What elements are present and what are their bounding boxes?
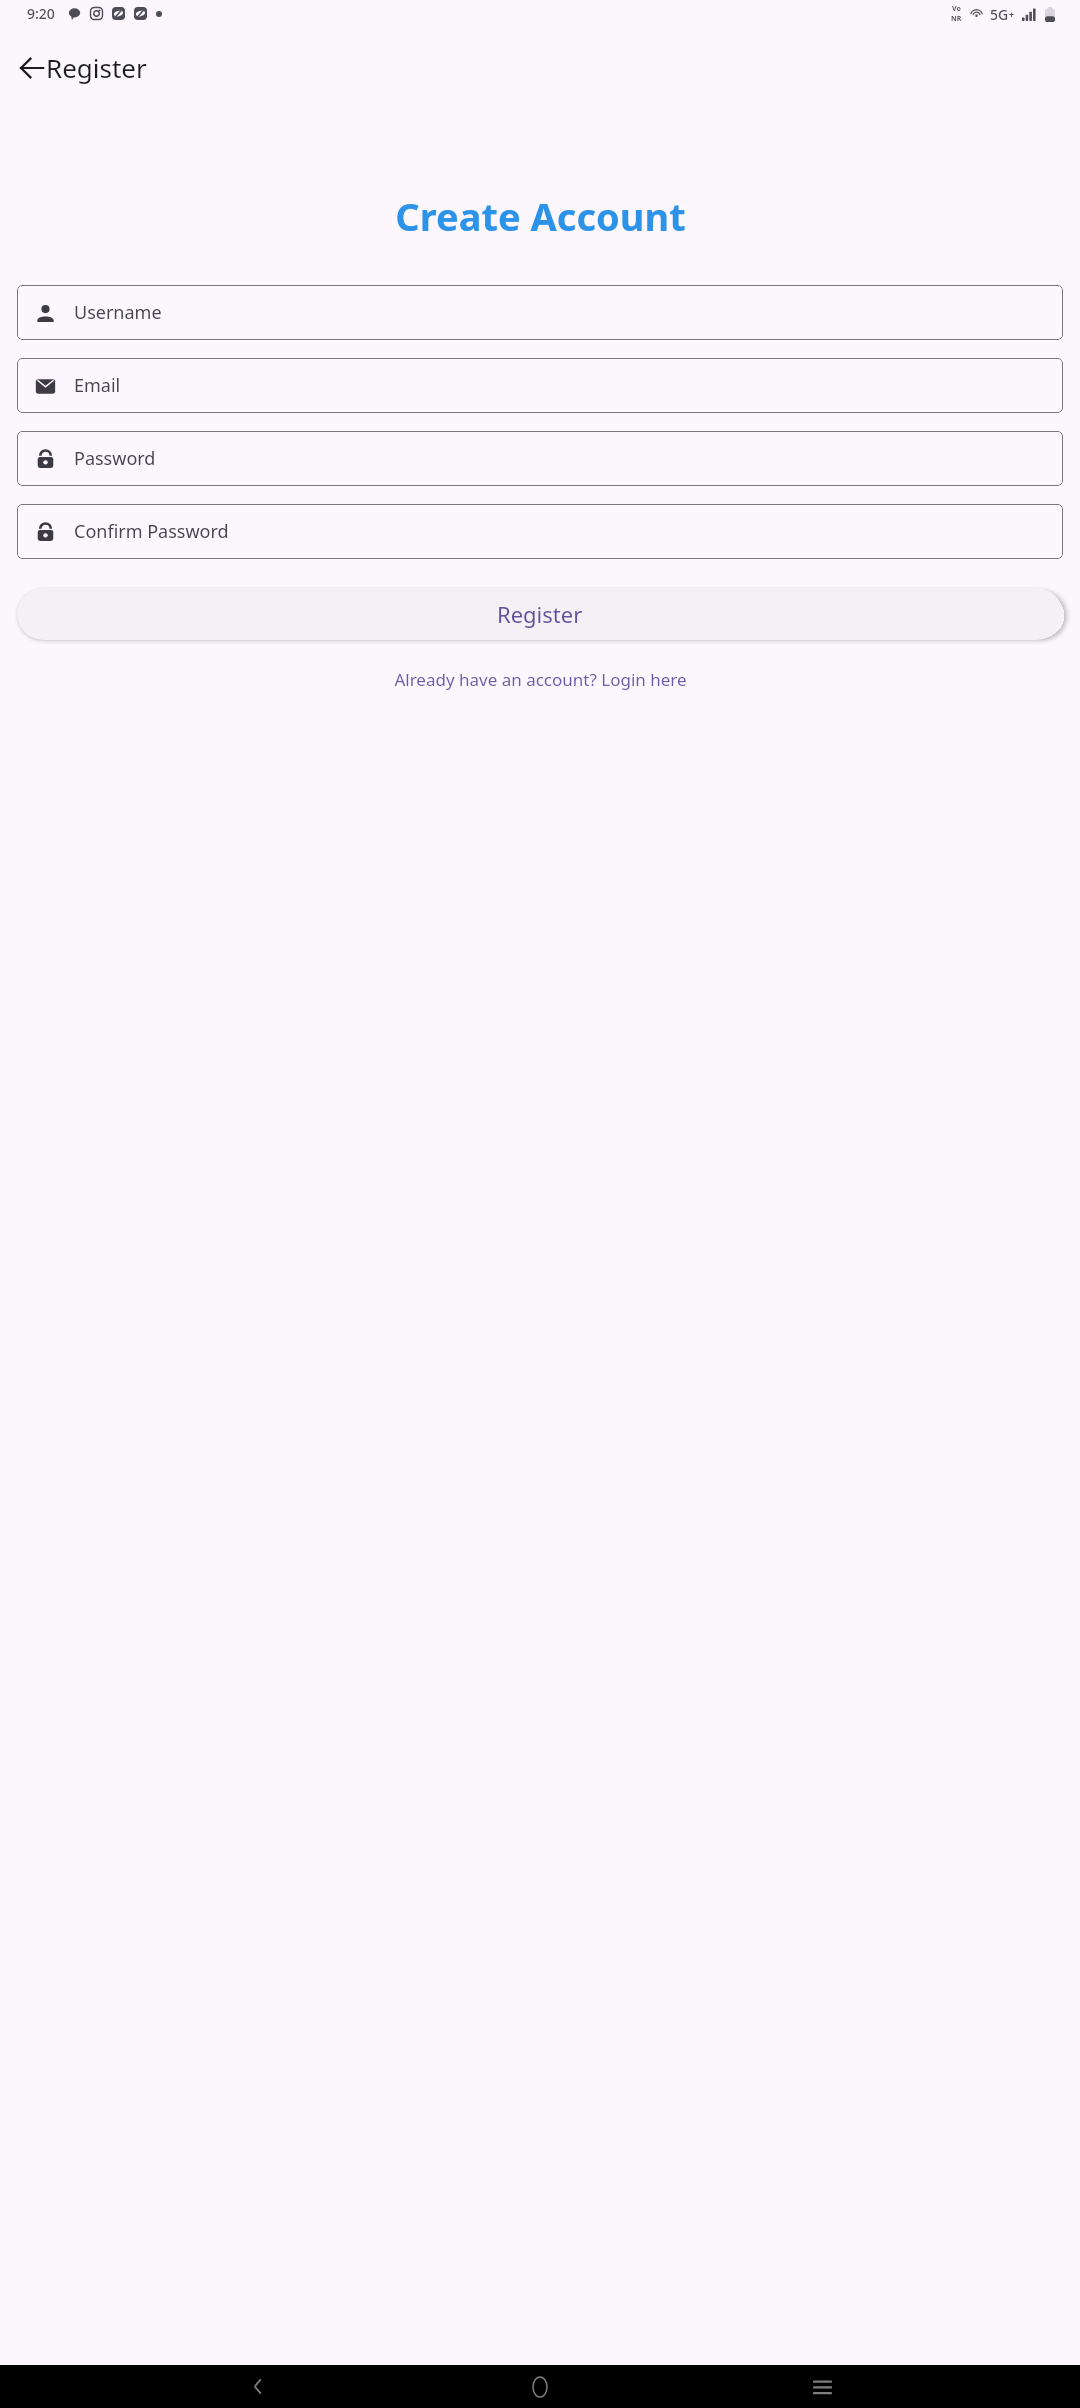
staticText: Register (46, 50, 147, 85)
staticText: Register (497, 599, 583, 629)
button[interactable]: Back (8, 44, 56, 92)
button[interactable]: Password (17, 431, 1063, 486)
button[interactable]: Recent apps (798, 2365, 846, 2408)
button[interactable]: Confirm Password (17, 504, 1063, 559)
button[interactable]: Back (234, 2365, 282, 2408)
staticText: + (1009, 8, 1015, 20)
staticText: 9:20 (27, 4, 55, 23)
button[interactable]: Username (17, 285, 1063, 340)
button[interactable]: Email (17, 358, 1063, 413)
staticText: Vo (952, 4, 961, 14)
staticText: Create Account (395, 190, 686, 242)
button[interactable]: Home (516, 2365, 564, 2408)
button[interactable]: Already have an account? Login here (0, 662, 1080, 697)
button[interactable]: Register (17, 588, 1063, 640)
staticText: Already have an account? Login here (394, 668, 687, 691)
staticText: NR (951, 14, 962, 24)
staticText: Confirm Password (74, 519, 229, 544)
staticText: Email (74, 373, 121, 398)
staticText: 5G (990, 5, 1009, 24)
staticText: Password (74, 446, 156, 471)
staticText: Username (74, 300, 162, 325)
